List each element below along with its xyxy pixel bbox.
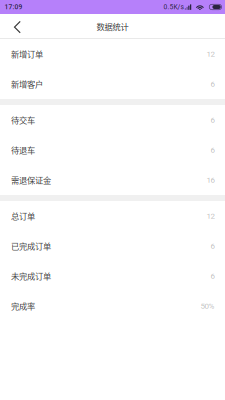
staticText: 数据统计 [96, 20, 128, 32]
button[interactable]: 待退车 [0, 135, 225, 165]
staticText: 16 [206, 175, 214, 185]
staticText: 6 [210, 115, 214, 125]
staticText: 新增客户 [11, 78, 43, 90]
staticText: 6 [210, 145, 214, 155]
staticText: 已完成订单 [11, 240, 51, 252]
staticText: 6 [210, 271, 214, 281]
button[interactable]: Back [0, 14, 30, 39]
staticText: 6 [210, 79, 214, 89]
button[interactable]: 需退保证金 [0, 165, 225, 195]
staticText: 50% [200, 301, 214, 311]
staticText: 新增订单 [11, 48, 43, 60]
staticText: 未完成订单 [11, 270, 51, 282]
staticText: 0.5K/s [163, 3, 183, 11]
staticText: 需退保证金 [11, 174, 51, 186]
staticText: 总订单 [11, 210, 35, 222]
staticText: 12 [206, 49, 214, 59]
staticText: 完成率 [11, 300, 35, 312]
staticText: 待退车 [11, 144, 35, 156]
staticText: 6 [210, 241, 214, 251]
button[interactable]: 未完成订单 [0, 261, 225, 291]
button[interactable]: 总订单 [0, 201, 225, 231]
button[interactable]: 新增客户 [0, 69, 225, 99]
staticText: 12 [206, 211, 214, 221]
button[interactable]: 已完成订单 [0, 231, 225, 261]
button[interactable]: 完成率 [0, 291, 225, 321]
button[interactable]: 新增订单 [0, 39, 225, 69]
staticText: 17:09 [5, 3, 23, 11]
staticText: 待交车 [11, 114, 35, 126]
button[interactable]: 待交车 [0, 105, 225, 135]
